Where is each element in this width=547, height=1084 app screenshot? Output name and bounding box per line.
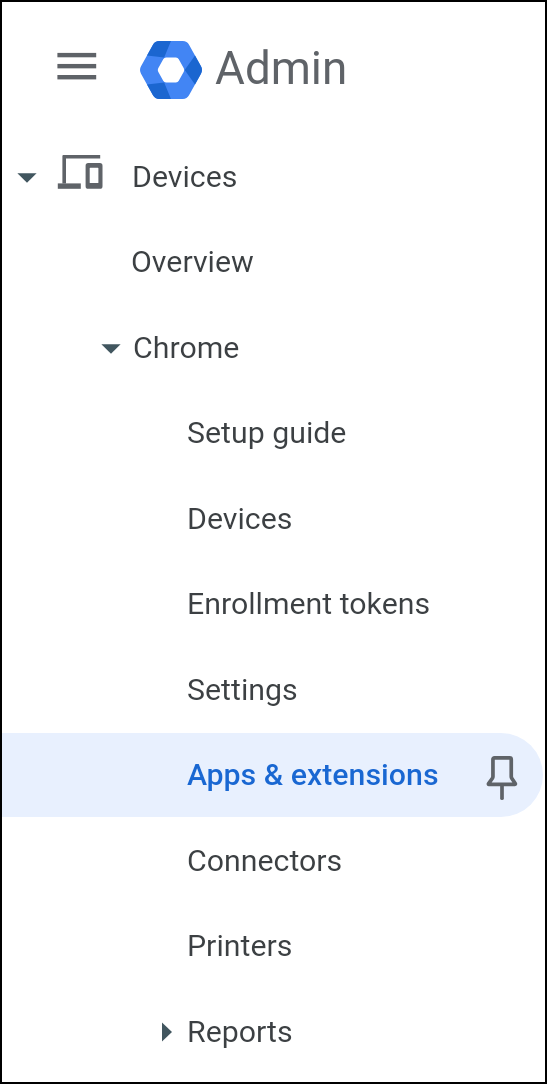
staticText: Reports [187, 1014, 293, 1050]
staticText: Printers [187, 928, 293, 964]
staticText: Overview [131, 244, 254, 280]
button[interactable]: Connectors [0, 819, 543, 903]
staticText: Apps & extensions [187, 757, 439, 793]
button[interactable]: Pin [484, 753, 520, 803]
button[interactable]: Devices [0, 135, 543, 219]
button[interactable]: Reports [0, 990, 543, 1074]
button[interactable]: Collapse Devices [13, 164, 41, 192]
staticText: Settings [187, 672, 298, 708]
button[interactable]: Overview [0, 220, 543, 304]
button[interactable]: Settings [0, 648, 543, 732]
staticText: Admin [215, 42, 348, 96]
button[interactable]: Menu [52, 42, 100, 90]
staticText: Setup guide [187, 415, 347, 451]
button[interactable]: Devices [0, 477, 543, 561]
button[interactable]: Chrome [0, 306, 543, 390]
button[interactable]: Printers [0, 904, 543, 988]
button[interactable]: Expand Reports [153, 1018, 181, 1046]
staticText: Devices [187, 501, 293, 537]
staticText: Enrollment tokens [187, 586, 431, 622]
button[interactable]: Setup guide [0, 391, 543, 475]
staticText: Chrome [133, 330, 240, 366]
staticText: Connectors [187, 843, 343, 879]
staticText: Devices [132, 159, 238, 195]
button[interactable]: Apps & extensions [0, 733, 543, 817]
button[interactable]: Enrollment tokens [0, 562, 543, 646]
button[interactable]: Collapse Chrome [97, 335, 125, 363]
